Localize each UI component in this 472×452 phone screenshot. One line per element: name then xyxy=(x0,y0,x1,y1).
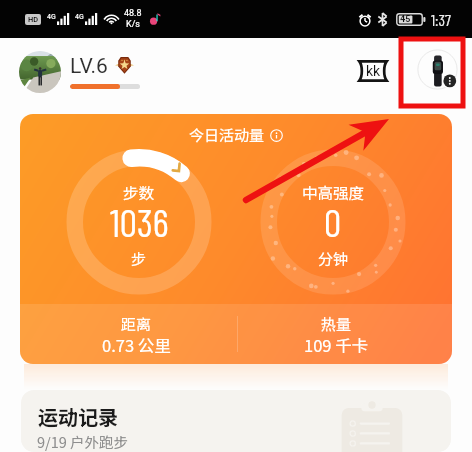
button[interactable]: 运动记录 xyxy=(21,390,451,452)
staticText: 1:37 xyxy=(431,10,451,29)
staticText: 今日活动量 xyxy=(189,124,265,146)
button[interactable]: Paired watch device xyxy=(414,46,461,93)
staticText: 步数 xyxy=(123,181,155,203)
staticText: 9/19 户外跑步 xyxy=(37,431,129,452)
staticText: 48.8 xyxy=(124,8,142,19)
staticText: K/s xyxy=(126,19,141,30)
staticText: kk xyxy=(366,63,381,79)
staticText: 中高强度 xyxy=(302,181,365,203)
staticText: 运动记录 xyxy=(38,402,118,431)
staticText: 4G xyxy=(75,13,84,21)
staticText: 步 xyxy=(131,248,147,270)
staticText: LV.6 xyxy=(70,54,108,79)
staticText: 0.73 公里 xyxy=(102,333,171,357)
staticText: 分钟 xyxy=(318,248,349,270)
button[interactable]: Profile avatar xyxy=(19,51,61,93)
staticText: 45 xyxy=(400,14,411,25)
staticText: 热量 xyxy=(321,313,352,335)
staticText: 109 千卡 xyxy=(304,333,369,357)
staticText: 4G xyxy=(47,13,56,21)
staticText: 距离 xyxy=(121,313,152,335)
button[interactable]: 今日活动量 xyxy=(20,114,452,364)
staticText: HD xyxy=(28,15,39,24)
button[interactable]: kk coupons xyxy=(358,60,388,82)
staticText: 0 xyxy=(324,198,342,244)
staticText: 1036 xyxy=(110,198,169,244)
